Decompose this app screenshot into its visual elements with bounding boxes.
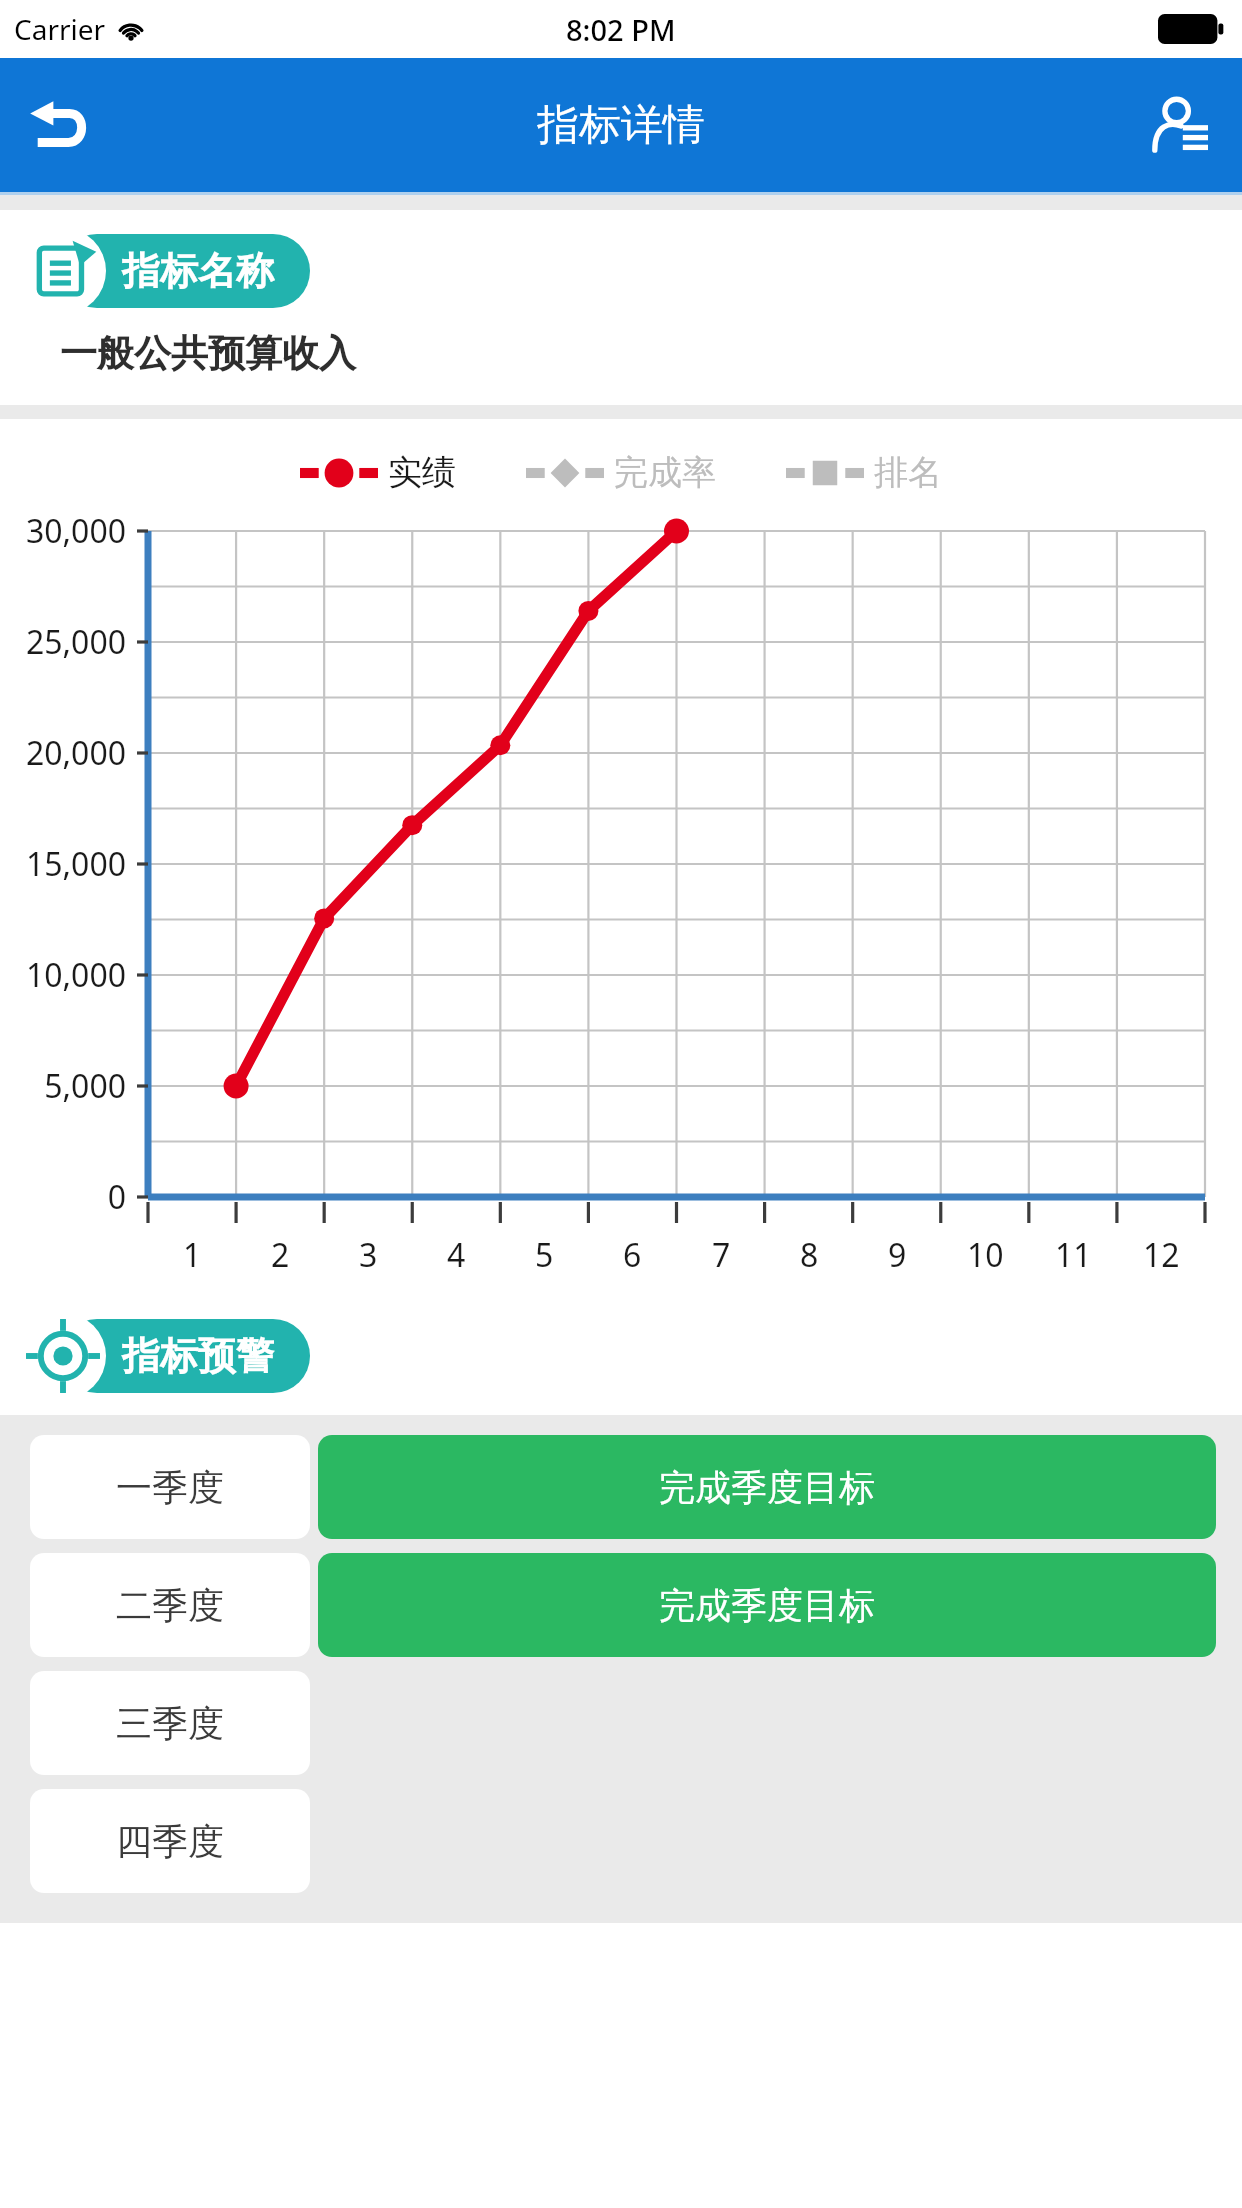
staticText: 三季度 xyxy=(116,1701,224,1746)
button[interactable]: 三季度 xyxy=(30,1671,1216,1775)
staticText: 1 xyxy=(183,1233,202,1277)
staticText: 指标详情 xyxy=(537,99,705,152)
button[interactable]: 指标名称 xyxy=(20,228,310,314)
staticText: 15,000 xyxy=(25,842,126,886)
staticText: 实绩 xyxy=(388,451,456,494)
button[interactable]: 二季度 xyxy=(30,1553,1216,1657)
button[interactable]: 实绩 xyxy=(300,451,456,494)
staticText: 30,000 xyxy=(25,509,126,553)
button[interactable]: 指标预警 xyxy=(20,1313,310,1399)
staticText: 5,000 xyxy=(44,1064,126,1108)
staticText: 11 xyxy=(1055,1233,1092,1277)
button[interactable]: 完成率 xyxy=(526,451,716,494)
staticText: 一般公共预算收入 xyxy=(60,330,356,377)
button[interactable]: 一季度 xyxy=(30,1435,1216,1539)
staticText: 2 xyxy=(271,1233,290,1277)
staticText: 二季度 xyxy=(116,1583,224,1628)
staticText: 20,000 xyxy=(25,731,126,775)
staticText: 8:02 PM xyxy=(566,10,676,49)
staticText: 4 xyxy=(447,1233,466,1277)
staticText: 指标预警 xyxy=(122,1332,274,1380)
staticText: 指标名称 xyxy=(122,247,274,295)
staticText: 完成季度目标 xyxy=(659,1583,875,1628)
staticText: 完成率 xyxy=(614,451,716,494)
staticText: 8 xyxy=(800,1233,819,1277)
staticText: 3 xyxy=(359,1233,378,1277)
button[interactable]: Account xyxy=(1132,77,1228,173)
button[interactable]: 排名 xyxy=(786,451,942,494)
staticText: 5 xyxy=(535,1233,554,1277)
staticText: 一季度 xyxy=(116,1465,224,1510)
staticText: 9 xyxy=(888,1233,907,1277)
staticText: 12 xyxy=(1143,1233,1180,1277)
staticText: 排名 xyxy=(874,451,942,494)
staticText: 6 xyxy=(623,1233,642,1277)
staticText: 10,000 xyxy=(25,953,126,997)
staticText: 25,000 xyxy=(25,620,126,664)
staticText: Carrier xyxy=(14,10,106,48)
button[interactable]: Back xyxy=(10,77,106,173)
button[interactable]: 四季度 xyxy=(30,1789,1216,1893)
staticText: 7 xyxy=(712,1233,731,1277)
staticText: 0 xyxy=(107,1175,126,1219)
staticText: 四季度 xyxy=(116,1819,224,1864)
staticText: 完成季度目标 xyxy=(659,1465,875,1510)
staticText: 10 xyxy=(967,1233,1004,1277)
